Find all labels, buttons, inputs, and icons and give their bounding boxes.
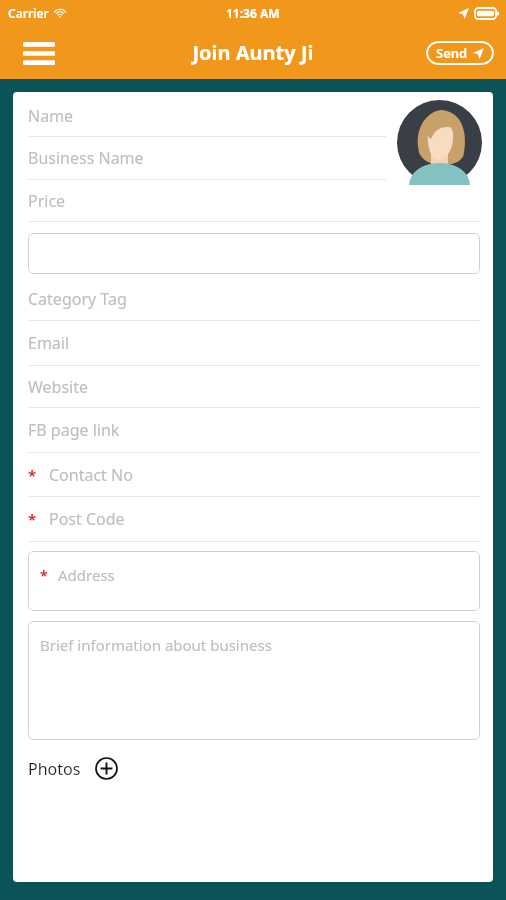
button[interactable]: * (28, 551, 480, 611)
button[interactable]: Name (28, 96, 480, 137)
button[interactable]: Profile photo (397, 100, 482, 185)
staticText: Contact No (49, 464, 133, 486)
staticText: Price (28, 190, 66, 212)
button[interactable]: Website (28, 366, 480, 408)
button[interactable]: * (28, 453, 480, 497)
staticText: Address (58, 565, 115, 585)
staticText: Send (436, 44, 468, 62)
staticText: Join Aunty Ji (192, 39, 314, 66)
staticText: Name (28, 105, 74, 127)
button[interactable]: Category Tag (28, 278, 480, 321)
staticText: Photos (28, 758, 81, 780)
staticText: * (40, 566, 48, 585)
button[interactable]: FB page link (28, 408, 480, 453)
other: Add photos (94, 756, 119, 781)
staticText: Category Tag (28, 288, 127, 310)
staticText: * (28, 465, 37, 485)
staticText: Email (28, 332, 70, 354)
staticText: 11:36 AM (226, 5, 280, 21)
button[interactable]: Price (28, 180, 480, 222)
staticText: Brief information about business (40, 635, 272, 655)
button[interactable]: Send (426, 41, 494, 65)
staticText: * (28, 509, 37, 529)
staticText: Post Code (49, 508, 125, 530)
button[interactable]: * (28, 497, 480, 542)
button[interactable]: Business Name (28, 137, 480, 180)
button[interactable]: Email (28, 321, 480, 366)
staticText: FB page link (28, 419, 120, 441)
button[interactable]: Menu (18, 32, 60, 74)
button[interactable] (28, 233, 480, 274)
button[interactable]: Photos (28, 756, 119, 781)
staticText: Business Name (28, 147, 144, 169)
button[interactable]: Brief information about business (28, 621, 480, 740)
staticText: Website (28, 376, 89, 398)
staticText: Carrier (8, 5, 49, 21)
